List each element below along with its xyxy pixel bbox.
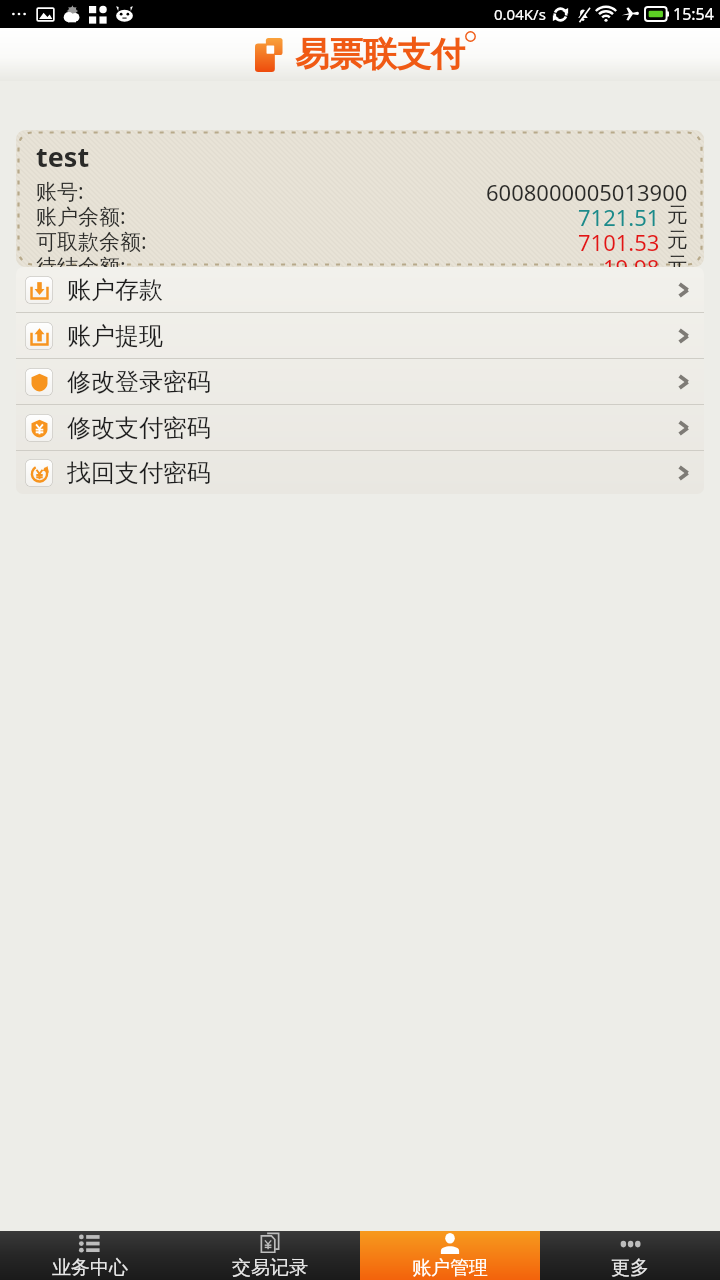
button[interactable]: 账户存款 (16, 267, 704, 312)
staticText: 6008000005013900 (486, 177, 688, 202)
staticText: 账户提现 (67, 321, 163, 351)
button[interactable]: 找回支付密码 (16, 451, 704, 494)
button[interactable]: 业务中心 (0, 1231, 180, 1280)
staticText: 19.98 (603, 252, 660, 267)
button[interactable]: 更多 (540, 1231, 720, 1280)
staticText: 找回支付密码 (67, 458, 211, 488)
button[interactable]: 修改登录密码 (16, 359, 704, 404)
button[interactable]: 账户管理 (360, 1231, 540, 1280)
staticText: 修改支付密码 (67, 413, 211, 443)
staticText: 7121.51 (578, 202, 660, 227)
staticText: 元 (667, 202, 688, 227)
button[interactable]: 交易记录 (180, 1231, 360, 1280)
staticText: 0.04K/s (494, 4, 546, 24)
staticText: 元 (667, 252, 688, 267)
staticText: 账户存款 (67, 275, 163, 305)
staticText: 元 (667, 227, 688, 252)
staticText: 易票联支付 (295, 33, 465, 76)
staticText: 账号: (36, 177, 84, 202)
staticText: 修改登录密码 (67, 367, 211, 397)
staticText: 待结余额: (36, 252, 126, 267)
staticText: 更多 (611, 1256, 649, 1280)
staticText: 15:54 (673, 3, 714, 25)
staticText: test (36, 138, 90, 175)
staticText: 账户余额: (36, 202, 126, 227)
button[interactable]: 修改支付密码 (16, 405, 704, 450)
staticText: 账户管理 (412, 1256, 488, 1280)
staticText: 可取款余额: (36, 227, 147, 252)
staticText: 7101.53 (578, 227, 660, 252)
button[interactable]: 账户提现 (16, 313, 704, 358)
staticText: 业务中心 (52, 1256, 128, 1280)
staticText: 交易记录 (232, 1256, 308, 1280)
